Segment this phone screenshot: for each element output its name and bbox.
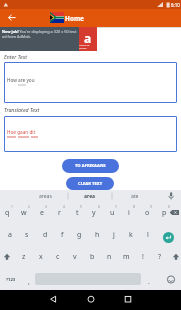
staticText: . (148, 277, 150, 286)
button[interactable] (120, 291, 136, 308)
button[interactable] (68, 203, 85, 223)
staticText: w (21, 208, 27, 218)
staticText: AdMob by Google (79, 44, 97, 49)
staticText: b (90, 252, 95, 262)
button[interactable] (33, 247, 50, 267)
staticText: Enter Text (4, 53, 28, 60)
button[interactable] (16, 203, 33, 223)
button[interactable] (152, 247, 169, 267)
staticText: y (92, 208, 96, 218)
button[interactable] (67, 247, 84, 267)
staticText: 9 (150, 205, 152, 209)
button[interactable]: CLEAR TEXT (66, 177, 114, 190)
staticText: g (77, 230, 82, 240)
button[interactable] (163, 232, 174, 243)
staticText: r (58, 208, 61, 218)
button[interactable] (0, 27, 97, 51)
staticText: 8 (133, 205, 135, 209)
button[interactable] (0, 247, 15, 267)
staticText: 6 (98, 205, 100, 209)
button[interactable] (135, 247, 152, 267)
button[interactable] (19, 225, 36, 245)
staticText: How are you (7, 77, 35, 83)
staticText: ate (131, 193, 139, 200)
staticText: d (43, 230, 48, 240)
button[interactable] (103, 203, 120, 223)
staticText: z (22, 252, 26, 262)
staticText: 7 (115, 205, 117, 209)
staticText: o (145, 208, 150, 218)
button[interactable] (86, 203, 103, 223)
staticText: TO AFRIKAANS (75, 163, 106, 169)
button[interactable] (69, 190, 111, 202)
staticText: i (128, 208, 130, 218)
button[interactable] (121, 203, 138, 223)
button[interactable] (142, 269, 155, 289)
staticText: e (40, 208, 44, 218)
staticText: , (28, 277, 30, 286)
staticText: a (84, 30, 92, 44)
staticText: v (73, 252, 77, 262)
staticText: m (123, 252, 130, 262)
staticText: 2 (28, 205, 30, 209)
staticText: h (95, 230, 100, 240)
button[interactable] (4, 10, 20, 26)
button[interactable] (23, 190, 67, 202)
button[interactable] (36, 225, 53, 245)
button[interactable] (88, 225, 105, 245)
staticText: j (113, 230, 115, 240)
button[interactable] (113, 190, 155, 202)
staticText: 4 (63, 205, 65, 209)
staticText: 5 (80, 205, 82, 209)
staticText: c (56, 252, 60, 262)
button[interactable] (0, 203, 16, 223)
staticText: k (129, 230, 133, 240)
staticText: t (76, 208, 79, 218)
staticText: 3 (45, 205, 47, 209)
staticText: x (39, 252, 43, 262)
button[interactable] (168, 247, 181, 267)
staticText: CLEAR TEXT (78, 181, 103, 187)
staticText: ! (142, 252, 144, 262)
staticText: ? (158, 252, 162, 262)
button[interactable] (84, 247, 101, 267)
staticText: p (162, 208, 167, 218)
staticText: areas (39, 193, 52, 200)
staticText: Hoe gaan dit (7, 129, 36, 135)
staticText: New job! You're displaying a 320 x 50 te… (2, 29, 79, 39)
button[interactable] (83, 291, 99, 308)
staticText: ?123 (6, 277, 16, 283)
button[interactable] (50, 247, 67, 267)
button[interactable] (22, 269, 35, 289)
button[interactable]: TO AFRIKAANS (62, 159, 119, 173)
staticText: 1 (11, 205, 13, 209)
button[interactable] (45, 291, 61, 308)
staticText: n (107, 252, 112, 262)
staticText: area (84, 193, 96, 200)
staticText: a (8, 230, 12, 240)
button[interactable] (167, 203, 181, 223)
button[interactable] (156, 203, 173, 223)
button[interactable] (138, 203, 155, 223)
button[interactable] (101, 247, 118, 267)
button[interactable] (140, 225, 157, 245)
button[interactable] (2, 225, 19, 245)
button[interactable] (53, 225, 70, 245)
button[interactable] (71, 225, 88, 245)
staticText: l (147, 230, 149, 240)
button[interactable] (33, 203, 50, 223)
button[interactable] (51, 203, 68, 223)
staticText: 6:10 (171, 2, 180, 8)
button[interactable] (163, 269, 179, 289)
button[interactable] (105, 225, 122, 245)
button[interactable] (16, 247, 33, 267)
button[interactable] (123, 225, 140, 245)
staticText: f (61, 230, 64, 240)
staticText: s (25, 230, 29, 240)
staticText: Home (65, 14, 84, 23)
staticText: u (110, 208, 115, 218)
button[interactable] (118, 247, 135, 267)
button[interactable] (166, 191, 176, 201)
button[interactable] (2, 269, 22, 289)
